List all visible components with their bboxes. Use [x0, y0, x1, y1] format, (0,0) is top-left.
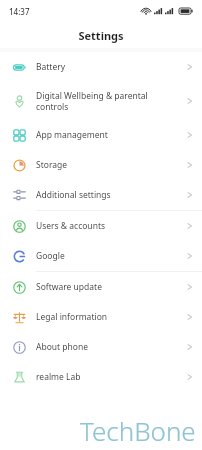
- staticText: Digital Wellbeing & parental controls: [36, 90, 179, 112]
- staticText: Google: [36, 250, 179, 262]
- staticText: 14:37: [9, 6, 30, 17]
- button[interactable]: About phone: [0, 332, 202, 362]
- button[interactable]: Users & accounts: [0, 211, 202, 241]
- staticText: App management: [36, 129, 179, 141]
- staticText: Software update: [36, 281, 179, 293]
- button[interactable]: realme Lab: [0, 362, 202, 392]
- staticText: TechBone: [80, 413, 196, 448]
- staticText: Users & accounts: [36, 220, 179, 232]
- staticText: realme Lab: [36, 371, 179, 383]
- staticText: Storage: [36, 159, 179, 171]
- button[interactable]: App management: [0, 120, 202, 150]
- button[interactable]: Software update: [0, 272, 202, 302]
- staticText: Legal information: [36, 311, 179, 323]
- staticText: Settings: [78, 28, 124, 43]
- staticText: About phone: [36, 341, 179, 353]
- button[interactable]: Digital Wellbeing & parental controls: [0, 82, 202, 120]
- button[interactable]: Additional settings: [0, 180, 202, 210]
- button[interactable]: Legal information: [0, 302, 202, 332]
- staticText: Battery: [36, 61, 179, 73]
- button[interactable]: Google: [0, 241, 202, 271]
- button[interactable]: Storage: [0, 150, 202, 180]
- staticText: Additional settings: [36, 189, 179, 201]
- button[interactable]: Battery: [0, 52, 202, 82]
